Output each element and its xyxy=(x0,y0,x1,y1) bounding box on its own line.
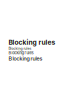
staticText: Blocking rules xyxy=(8,50,33,55)
staticText: Blocking rules xyxy=(8,46,31,50)
staticText: Blocking rules xyxy=(8,55,42,62)
staticText: Blocking rules xyxy=(8,38,55,46)
